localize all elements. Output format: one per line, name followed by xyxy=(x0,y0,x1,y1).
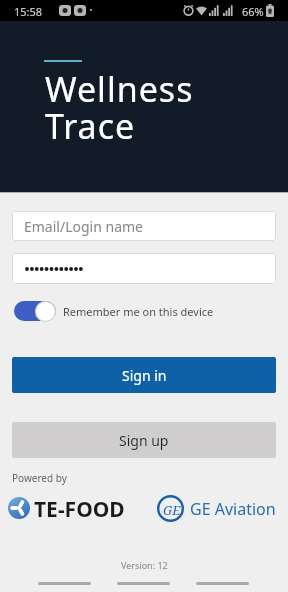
button[interactable]: GE xyxy=(157,495,278,522)
button[interactable] xyxy=(38,582,91,585)
staticText: 15:58 xyxy=(14,4,43,19)
staticText: Powered by xyxy=(12,471,67,485)
button[interactable]: Sign up xyxy=(12,422,276,458)
staticText: Email/Login name xyxy=(24,217,143,236)
staticText: Version: 12 xyxy=(121,559,168,571)
button[interactable] xyxy=(12,253,276,284)
staticText: Sign up xyxy=(119,431,169,450)
staticText: GE Aviation xyxy=(190,498,276,520)
staticText: GE xyxy=(163,501,181,519)
button[interactable] xyxy=(117,582,170,585)
staticText: Wellness xyxy=(45,66,194,112)
staticText: Trace xyxy=(45,103,136,149)
button[interactable]: TE-FOOD xyxy=(8,497,133,520)
button[interactable] xyxy=(196,582,249,585)
button[interactable] xyxy=(14,299,58,323)
button[interactable]: Sign in xyxy=(12,357,276,393)
button[interactable]: Email/Login name xyxy=(12,211,276,241)
staticText: 66% xyxy=(242,4,264,19)
staticText: TE-FOOD xyxy=(34,495,125,518)
staticText: Sign in xyxy=(122,366,167,385)
staticText: Remember me on this device xyxy=(63,304,214,319)
